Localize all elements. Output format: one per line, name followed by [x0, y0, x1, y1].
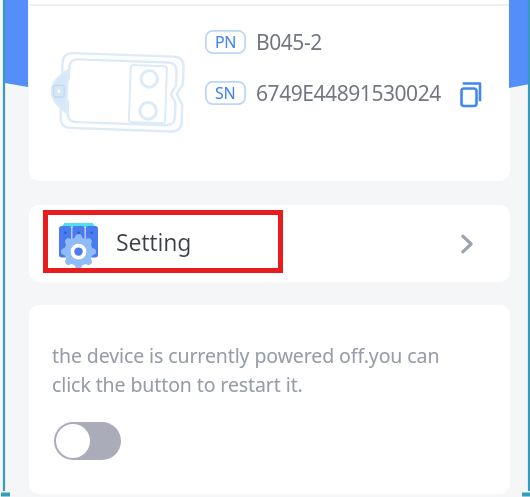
- staticText: SN: [215, 82, 236, 104]
- staticText: B045-2: [256, 28, 322, 57]
- staticText: Setting: [116, 226, 192, 257]
- button[interactable]: Setting: [29, 205, 510, 282]
- button[interactable]: Power switch, off: [54, 422, 121, 460]
- staticText: PN: [215, 31, 237, 53]
- staticText: the device is currently powered off.you …: [52, 342, 440, 398]
- button[interactable]: Copy serial number: [456, 77, 488, 109]
- staticText: 6749E44891530024: [256, 79, 441, 108]
